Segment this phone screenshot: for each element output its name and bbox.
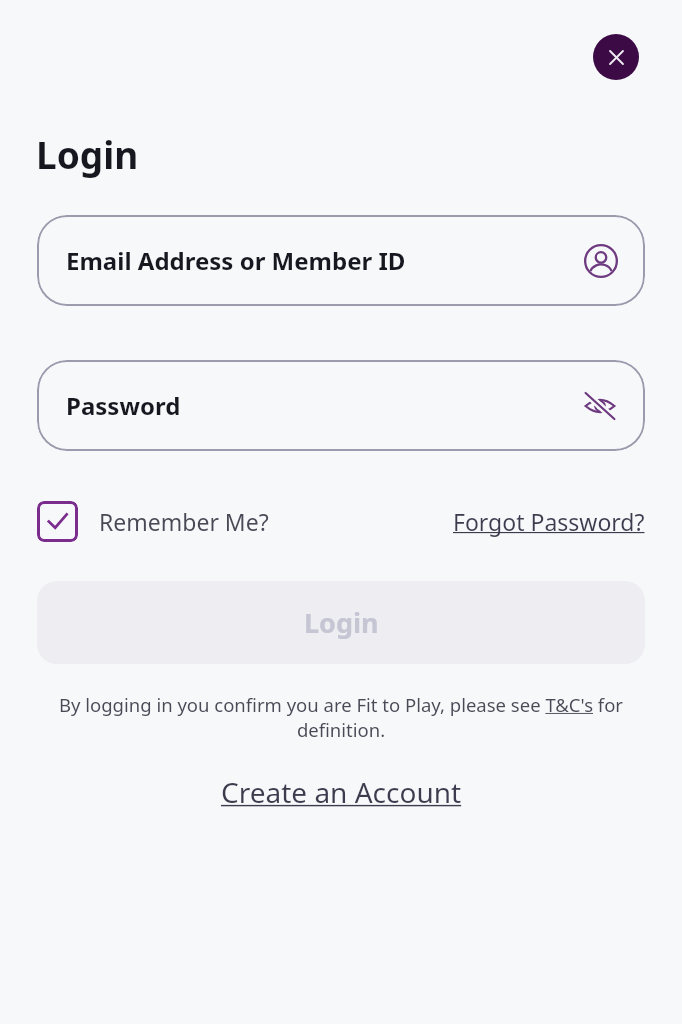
staticText: Create an Account — [221, 773, 462, 811]
button[interactable]: Remember Me? — [37, 501, 269, 542]
button[interactable]: Show password — [581, 387, 619, 425]
button[interactable]: Login — [37, 581, 645, 664]
staticText: Forgot Password? — [453, 506, 645, 537]
button[interactable]: Close — [593, 34, 639, 80]
staticText: By logging in you confirm you are Fit to… — [30, 692, 652, 742]
staticText: Login — [304, 604, 379, 641]
button[interactable]: Password — [37, 360, 645, 451]
button[interactable]: Create an Account — [221, 773, 462, 811]
button[interactable]: Email Address or Member ID — [37, 215, 645, 306]
other: Account — [583, 243, 619, 279]
staticText: Email Address or Member ID — [66, 244, 406, 277]
button[interactable]: Forgot Password? — [453, 506, 645, 537]
staticText: Login — [36, 129, 139, 179]
staticText: Password — [66, 389, 181, 422]
staticText: Remember Me? — [99, 506, 269, 537]
